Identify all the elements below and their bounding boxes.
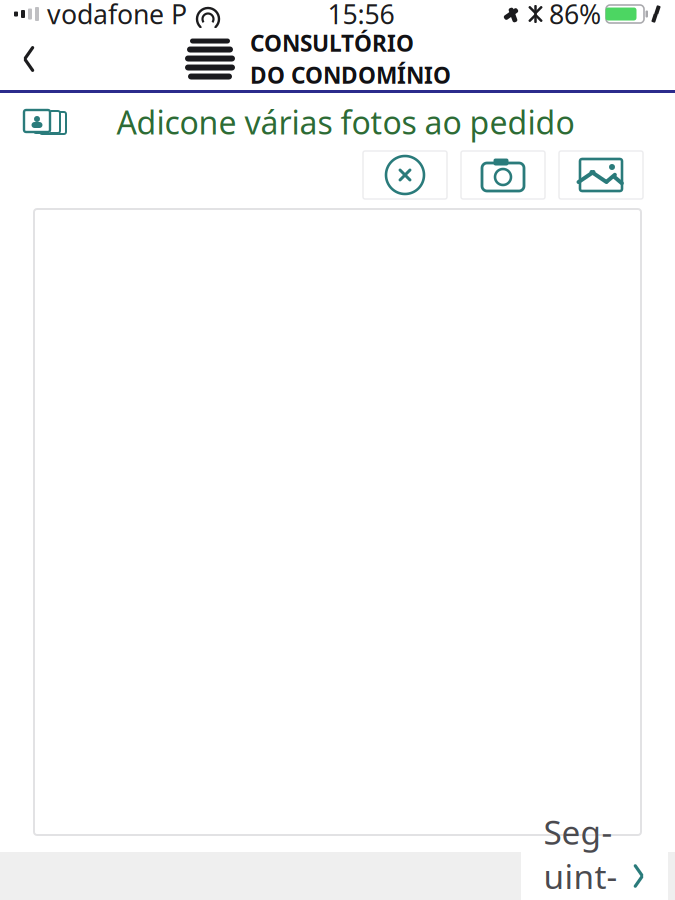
staticText: 15:56 [327,0,394,32]
staticText: 86% [549,0,601,32]
staticText: Seguinte [543,810,617,900]
staticText: Adicone várias fotos ao pedido [116,101,574,143]
button[interactable]: Take photo [461,151,545,199]
button[interactable]: Choose from library [559,151,643,199]
staticText: DO CONDOMÍNIO [250,60,451,90]
staticText: CONSULTÓRIO [250,28,414,58]
staticText: vodafone P [47,0,187,32]
button[interactable]: Seguinte [521,852,668,900]
button[interactable]: Back [0,28,58,90]
button[interactable]: Cancel [363,151,447,199]
